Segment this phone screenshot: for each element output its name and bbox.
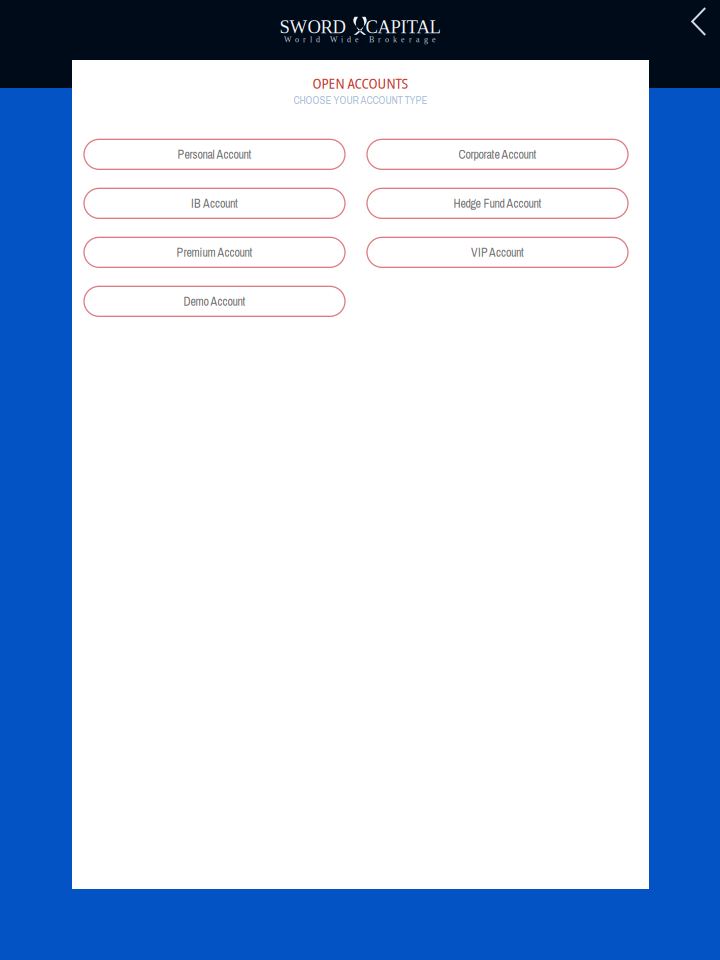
staticText: IB Account (191, 195, 238, 211)
button[interactable]: Back (677, 0, 720, 50)
button[interactable]: Personal Account (84, 139, 345, 169)
staticText: VIP Account (471, 244, 524, 260)
button[interactable]: Demo Account (84, 286, 345, 316)
button[interactable]: Hedge Fund Account (367, 188, 628, 218)
staticText: Corporate Account (458, 146, 536, 162)
staticText: Premium Account (176, 244, 252, 260)
button[interactable]: IB Account (84, 188, 345, 218)
staticText: Personal Account (177, 146, 251, 162)
staticText: OPEN ACCOUNTS (312, 73, 408, 93)
staticText: W o r l d W i d e B r o k e r a g e (284, 35, 436, 44)
staticText: CAPITAL (365, 17, 440, 37)
staticText: Hedge Fund Account (453, 195, 541, 211)
staticText: Demo Account (183, 293, 245, 309)
staticText: SWORD (279, 17, 345, 37)
button[interactable]: Corporate Account (367, 139, 628, 169)
button[interactable]: Premium Account (84, 237, 345, 267)
button[interactable]: VIP Account (367, 237, 628, 267)
staticText: CHOOSE YOUR ACCOUNT TYPE (293, 93, 427, 107)
